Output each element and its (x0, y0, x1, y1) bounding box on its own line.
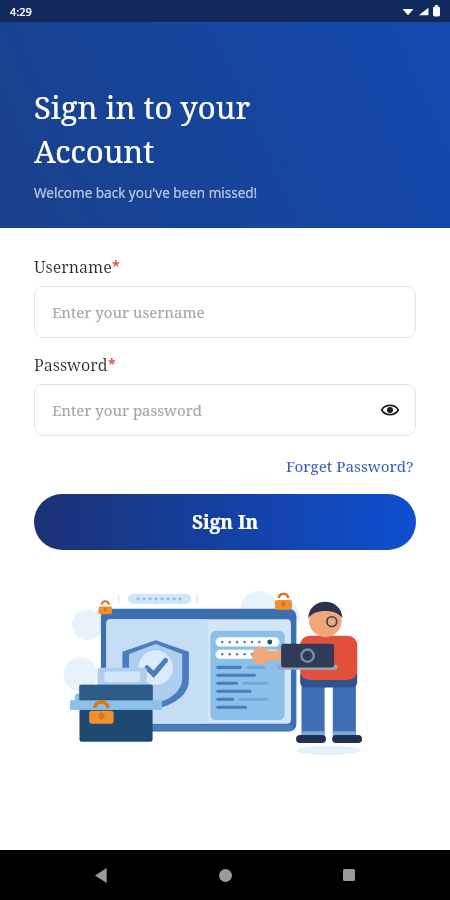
button[interactable]: Recent apps (327, 853, 371, 897)
staticText: Password (34, 354, 108, 376)
button[interactable]: Enter your username (34, 286, 416, 338)
button[interactable]: Forget Password? (284, 454, 416, 478)
button[interactable]: Back (80, 853, 124, 897)
staticText: Enter your username (52, 302, 205, 322)
staticText: Forget Password? (286, 456, 414, 476)
staticText: Sign In (192, 509, 259, 535)
staticText: Sign in to your (34, 86, 251, 128)
staticText: Account (34, 130, 155, 172)
staticText: Username (34, 256, 112, 278)
button[interactable]: Show password (376, 396, 404, 424)
button[interactable]: Enter your password (34, 384, 416, 436)
staticText: 4:29 (10, 4, 32, 19)
button[interactable]: Sign In (34, 494, 416, 550)
staticText: * (108, 354, 116, 373)
button[interactable]: Home (203, 853, 247, 897)
staticText: Welcome back you've been missed! (34, 184, 258, 202)
staticText: * (112, 256, 120, 275)
staticText: Enter your password (52, 400, 202, 420)
